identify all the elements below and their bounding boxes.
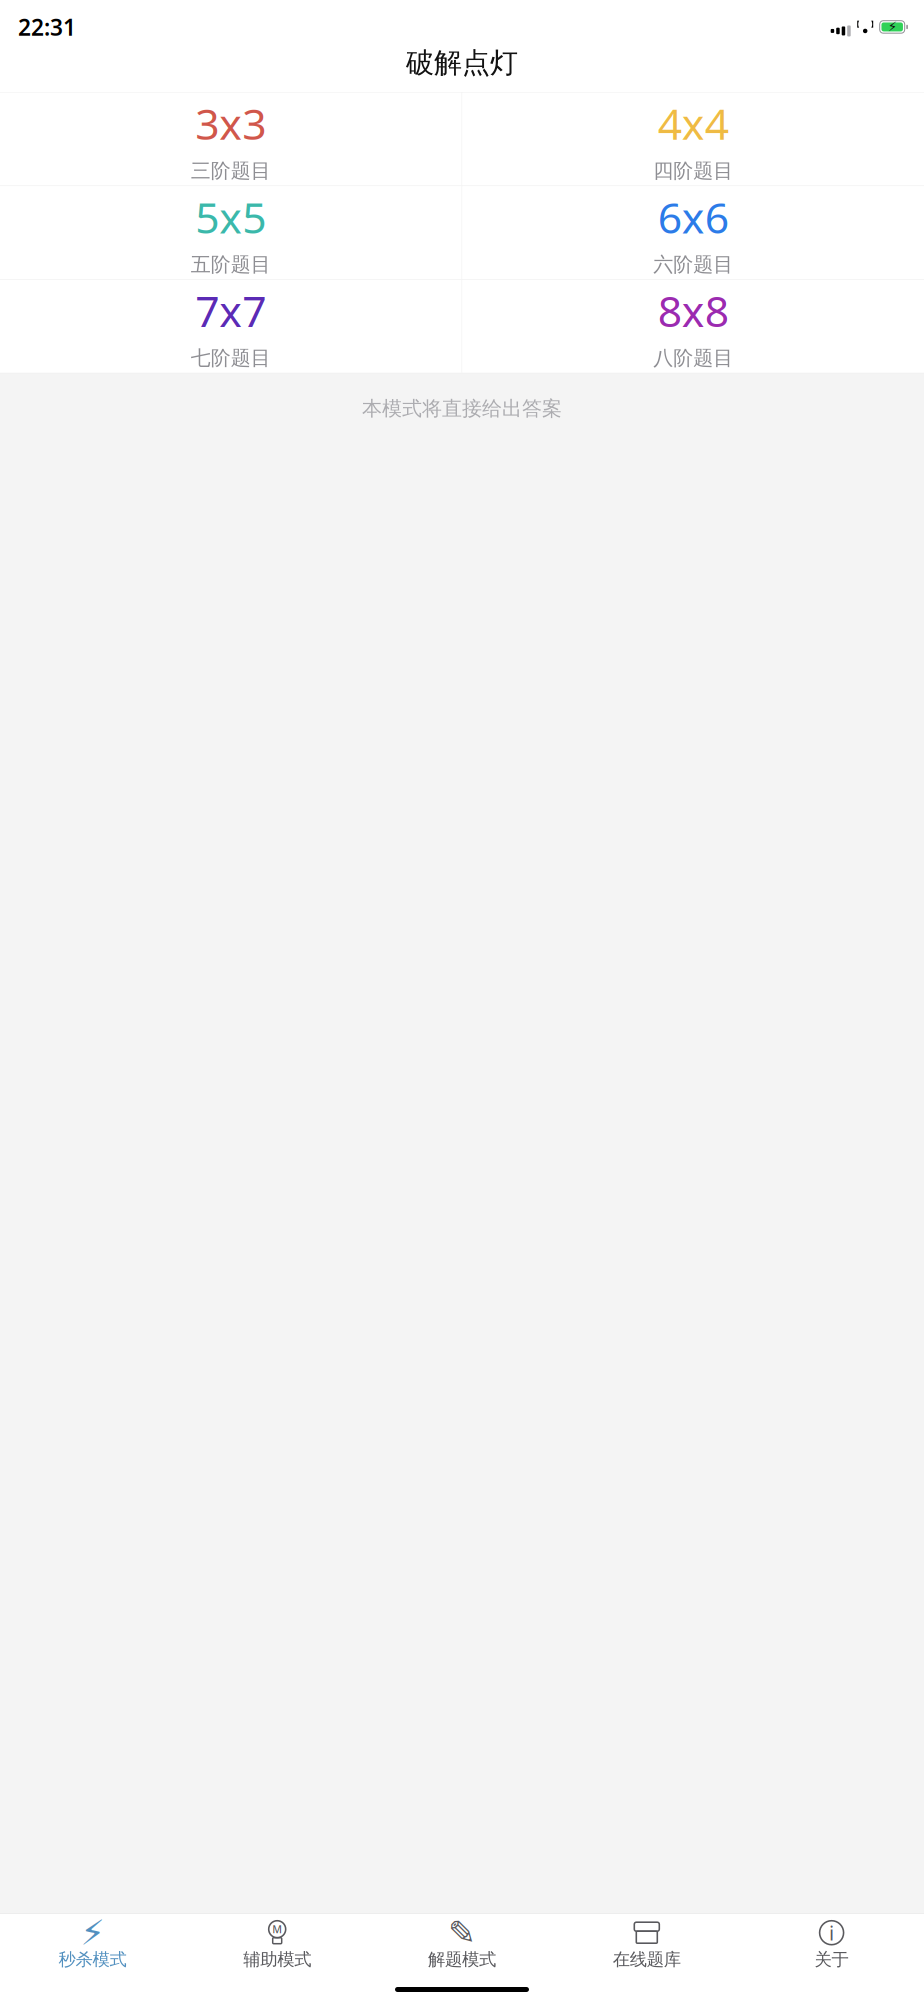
staticText: ⚡︎ — [888, 19, 897, 34]
staticText: ⚡︎ — [80, 1913, 104, 1952]
staticText: ✎ — [448, 1914, 476, 1952]
staticText: 破解点灯 — [406, 46, 518, 80]
staticText: i — [829, 1919, 834, 1946]
button[interactable]: 7x7 — [0, 280, 462, 373]
staticText: 3x3 — [195, 95, 266, 152]
button[interactable]: M — [185, 1914, 370, 1970]
button[interactable]: 5x5 — [0, 186, 462, 279]
button[interactable]: i — [739, 1914, 924, 1970]
staticText: 4x4 — [658, 95, 729, 152]
staticText: 8x8 — [658, 282, 729, 339]
staticText: 七阶题目 — [191, 346, 271, 370]
staticText: M — [272, 1922, 282, 1936]
button[interactable]: ⚡︎ — [0, 1914, 185, 1970]
button[interactable]: 在线题库 — [554, 1914, 739, 1970]
staticText: 八阶题目 — [653, 346, 733, 370]
staticText: 六阶题目 — [653, 252, 733, 277]
staticText: 辅助模式 — [243, 1949, 311, 1970]
button[interactable]: 6x6 — [462, 186, 924, 279]
staticText: 解题模式 — [428, 1949, 496, 1970]
button[interactable]: 4x4 — [462, 93, 924, 186]
staticText: 5x5 — [195, 189, 266, 245]
staticText: 五阶题目 — [191, 252, 271, 277]
button[interactable]: ✎ — [370, 1914, 554, 1970]
staticText: 7x7 — [195, 282, 266, 339]
staticText: 在线题库 — [613, 1949, 681, 1970]
staticText: 三阶题目 — [191, 159, 271, 183]
staticText: 本模式将直接给出答案 — [362, 396, 562, 421]
staticText: 6x6 — [658, 189, 729, 245]
button[interactable]: 3x3 — [0, 93, 462, 186]
staticText: 关于 — [815, 1949, 849, 1970]
staticText: 秒杀模式 — [58, 1949, 126, 1970]
staticText: 四阶题目 — [653, 159, 733, 183]
button[interactable]: 8x8 — [462, 280, 924, 373]
staticText: 22:31 — [18, 12, 76, 42]
